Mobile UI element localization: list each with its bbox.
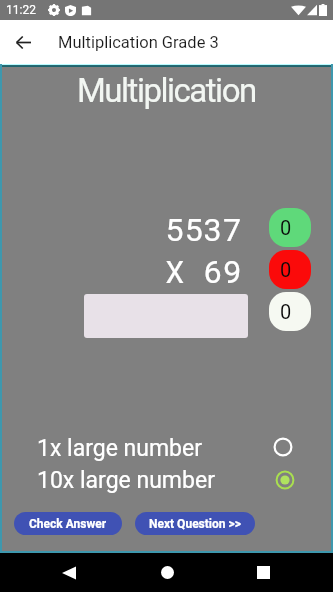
button[interactable]: 0 — [269, 250, 311, 289]
button[interactable]: Home — [147, 553, 187, 592]
button[interactable]: 0 — [269, 292, 311, 331]
button[interactable]: Back — [49, 553, 89, 592]
staticText: Next Question >> — [149, 517, 241, 531]
button[interactable]: 1x large number — [32, 432, 297, 462]
button[interactable]: Next Question >> — [135, 512, 255, 535]
staticText: 0 — [280, 216, 292, 239]
staticText: Check Answer — [29, 517, 107, 531]
button[interactable]: Recent apps — [243, 553, 283, 592]
staticText: Multiplication — [77, 71, 256, 110]
staticText: Multiplication Grade 3 — [58, 33, 219, 52]
button[interactable]: 0 — [269, 208, 311, 247]
staticText: 0 — [280, 300, 292, 323]
staticText: X 69 — [165, 249, 242, 291]
staticText: 0 — [280, 258, 292, 281]
staticText: 11:22 — [6, 3, 36, 17]
staticText: 1x large number — [37, 435, 202, 462]
button[interactable]: Back — [9, 28, 37, 56]
button[interactable]: Check Answer — [14, 512, 122, 535]
staticText: 10x large number — [37, 467, 215, 494]
button[interactable]: 10x large number — [32, 464, 297, 494]
staticText: 5537 — [165, 207, 242, 249]
